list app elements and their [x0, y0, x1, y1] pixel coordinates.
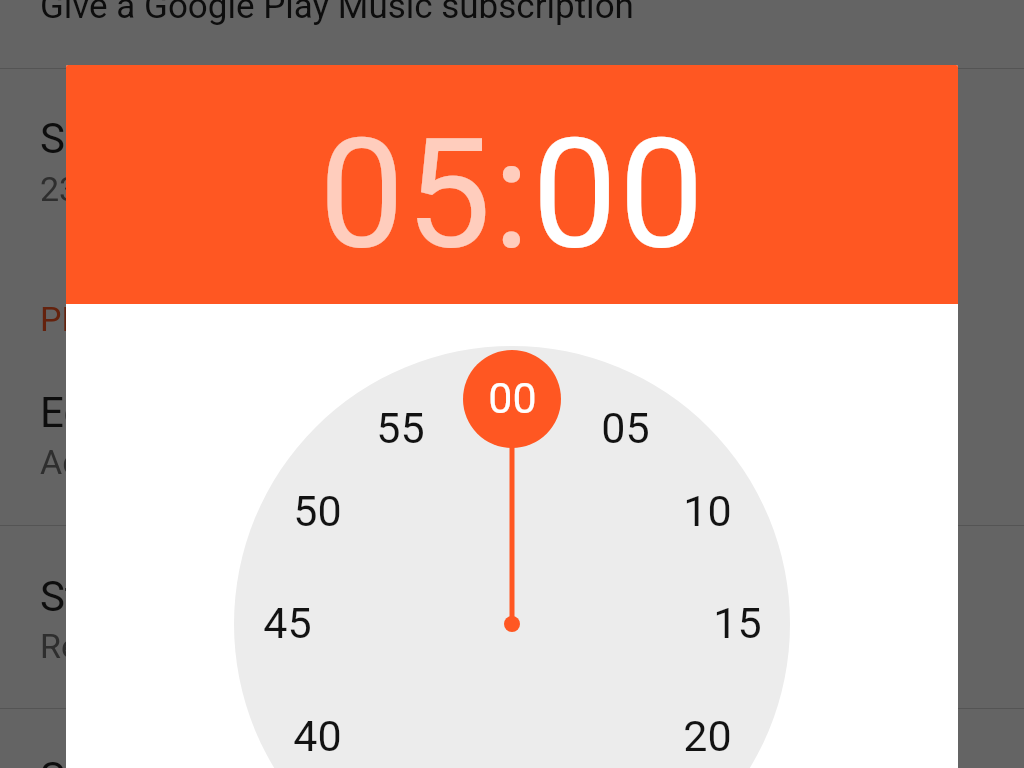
staticText: 20 — [683, 711, 732, 761]
button[interactable]: 00 — [467, 368, 557, 428]
button[interactable]: 15 — [692, 593, 782, 653]
button[interactable]: Equalizer — [0, 340, 1024, 525]
staticText: 10 — [683, 486, 732, 536]
staticText: 55 — [376, 403, 425, 453]
staticText: 50 — [293, 486, 342, 536]
staticText: 15 — [713, 598, 762, 648]
staticText: Give a Google Play Music subscription — [40, 0, 634, 27]
button[interactable]: 55 — [355, 398, 445, 458]
staticText: 45 — [263, 598, 312, 648]
staticText: 00 — [488, 373, 537, 423]
button[interactable]: 05 — [319, 106, 493, 284]
button[interactable]: Sound quality — [0, 709, 1024, 768]
staticText: 23 minutes — [40, 169, 209, 209]
button[interactable]: 00 — [532, 106, 706, 284]
staticText: Storage — [40, 572, 185, 621]
staticText: Sleep timer — [40, 114, 251, 163]
button[interactable]: Storage — [0, 526, 1024, 708]
staticText: Sound quality — [40, 753, 294, 768]
button[interactable]: 10 — [662, 481, 752, 541]
button[interactable]: 40 — [272, 706, 362, 766]
staticText: Adjust sound settings — [40, 442, 369, 482]
staticText: PLAYBACK — [40, 299, 208, 339]
button[interactable]: 45 — [242, 593, 332, 653]
staticText: 05 — [601, 403, 650, 453]
staticText: Equalizer — [40, 388, 211, 437]
button[interactable]: 20 — [662, 706, 752, 766]
staticText: 40 — [293, 711, 342, 761]
button[interactable]: Sleep timer — [0, 69, 1024, 270]
staticText: Remove downloaded music — [40, 626, 457, 666]
button[interactable]: 05 — [580, 398, 670, 458]
button[interactable]: 50 — [272, 481, 362, 541]
staticText: : — [493, 106, 532, 284]
button[interactable]: Give a Google Play Music subscription — [0, 0, 1024, 68]
